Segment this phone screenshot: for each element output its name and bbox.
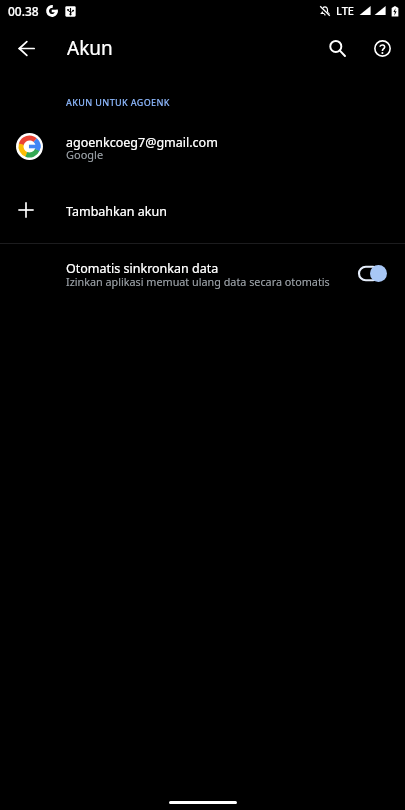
button[interactable]: Tambahkan akun	[0, 186, 405, 233]
staticText: LTE	[336, 3, 354, 18]
staticText: agoenkcoeg7@gmail.com	[66, 134, 218, 151]
button[interactable]: Back	[6, 28, 46, 68]
staticText: Tambahkan akun	[66, 203, 167, 220]
staticText: Akun	[67, 35, 113, 61]
button[interactable]: Otomatis sinkronkan data	[0, 253, 405, 299]
staticText: Izinkan aplikasi memuat ulang data secar…	[66, 274, 330, 289]
button[interactable]: agoenkcoeg7@gmail.com	[0, 118, 405, 174]
staticText: Otomatis sinkronkan data	[66, 260, 219, 277]
button[interactable]: Search	[315, 26, 360, 71]
staticText: Google	[66, 147, 104, 162]
staticText: 00.38	[8, 3, 39, 19]
staticText: AKUN UNTUK AGOENK	[66, 96, 170, 108]
button[interactable]: Help	[360, 26, 405, 71]
button[interactable]: Auto-sync toggle	[359, 265, 387, 282]
